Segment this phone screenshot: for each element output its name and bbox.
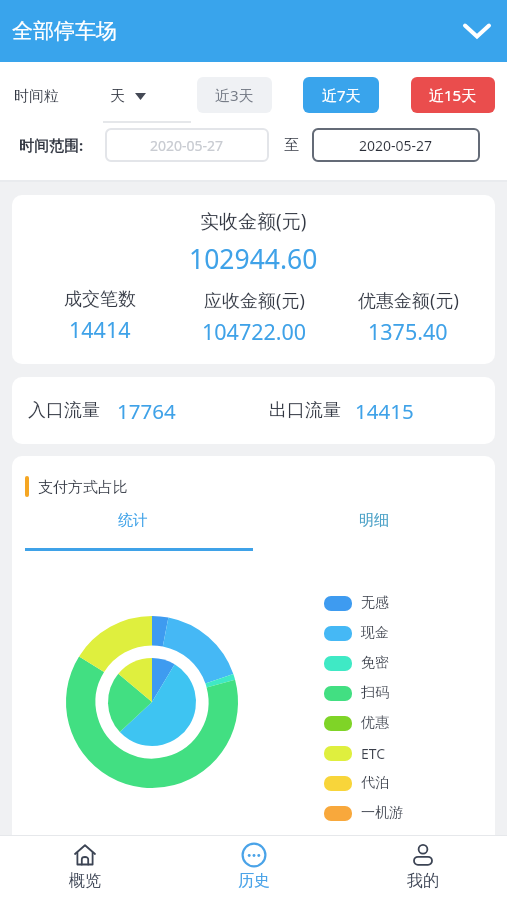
staticText: 代泊 — [361, 774, 389, 792]
staticText: 104722.00 — [202, 317, 307, 346]
staticText: 成交笔数 — [64, 288, 136, 311]
staticText: 统计 — [118, 511, 148, 530]
staticText: 17764 — [117, 397, 176, 425]
staticText: 2020-05-27 — [359, 136, 433, 155]
staticText: 1375.40 — [368, 317, 448, 346]
button[interactable]: 明细 — [253, 506, 495, 534]
staticText: 至 — [284, 136, 299, 155]
button[interactable]: 近7天 — [303, 77, 379, 113]
button[interactable]: 2020-05-27 — [105, 128, 269, 162]
staticText: 实收金额(元) — [200, 208, 307, 234]
staticText: 全部停车场 — [12, 18, 117, 44]
button[interactable]: 我的 — [338, 836, 507, 900]
staticText: 入口流量 — [28, 399, 100, 422]
staticText: 近7天 — [322, 85, 361, 105]
staticText: 现金 — [361, 624, 389, 642]
button[interactable]: 2020-05-27 — [312, 128, 480, 162]
button[interactable]: 全部停车场 — [0, 0, 507, 62]
staticText: 应收金额(元) — [204, 288, 305, 313]
staticText: 无感 — [361, 594, 389, 612]
button[interactable]: 近15天 — [411, 77, 495, 113]
button[interactable]: 历史 — [169, 836, 338, 900]
staticText: 免密 — [361, 654, 389, 672]
button[interactable]: 概览 — [0, 836, 169, 900]
staticText: 近3天 — [215, 85, 254, 105]
staticText: 2020-05-27 — [150, 136, 224, 155]
staticText: 时间范围: — [19, 135, 84, 155]
staticText: 扫码 — [361, 684, 389, 702]
staticText: 历史 — [238, 871, 270, 891]
staticText: 概览 — [69, 871, 101, 891]
button[interactable]: 近3天 — [197, 77, 272, 113]
staticText: 近15天 — [429, 85, 477, 105]
staticText: ETC — [361, 744, 386, 763]
staticText: 102944.60 — [189, 241, 318, 277]
button[interactable]: 统计 — [12, 506, 253, 534]
staticText: 优惠 — [361, 714, 389, 732]
staticText: 天 — [110, 87, 125, 106]
staticText: 明细 — [359, 511, 389, 530]
staticText: 一机游 — [361, 804, 403, 822]
staticText: 支付方式占比 — [38, 478, 128, 497]
staticText: 时间粒 — [14, 87, 59, 106]
staticText: 14415 — [355, 397, 414, 425]
staticText: 优惠金额(元) — [358, 288, 459, 313]
staticText: 我的 — [407, 871, 439, 891]
staticText: 14414 — [69, 315, 131, 344]
staticText: 出口流量 — [269, 399, 341, 422]
